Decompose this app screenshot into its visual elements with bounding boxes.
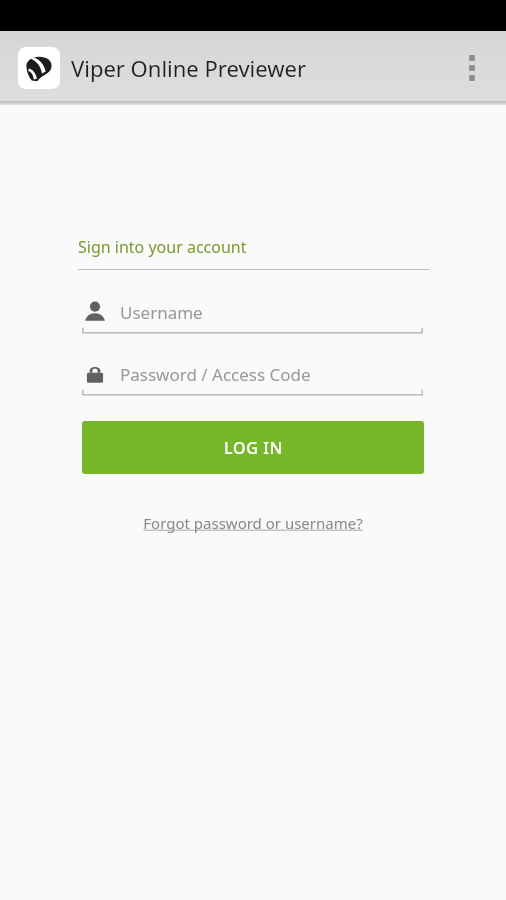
staticText: Viper Online Previewer — [71, 53, 307, 83]
button[interactable]: LOG IN — [82, 421, 424, 474]
staticText: Password / Access Code — [120, 363, 311, 386]
staticText: Username — [120, 301, 203, 324]
button[interactable]: More options — [448, 44, 496, 92]
staticText: Sign into your account — [78, 236, 247, 258]
staticText: LOG IN — [224, 437, 283, 459]
button[interactable]: Password / Access Code — [82, 355, 423, 400]
staticText: Forgot password or username? — [143, 513, 363, 533]
button[interactable]: Forgot password or username? — [143, 513, 363, 533]
button[interactable]: Username — [82, 293, 423, 338]
